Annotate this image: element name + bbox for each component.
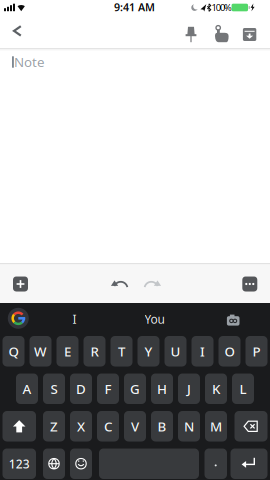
button[interactable] [240, 24, 260, 44]
button[interactable] [13, 276, 28, 291]
staticText: W [34, 342, 47, 360]
button[interactable]: G [124, 373, 146, 404]
staticText: V [131, 417, 139, 435]
staticText: G [130, 380, 140, 398]
button[interactable] [43, 448, 65, 479]
staticText: K [212, 380, 220, 398]
staticText: Q [8, 342, 18, 360]
button[interactable]: T [110, 336, 132, 366]
staticText: I [200, 342, 205, 360]
staticText: N [184, 417, 194, 435]
button[interactable] [242, 276, 257, 291]
staticText: D [76, 380, 86, 398]
staticText: Y [144, 342, 152, 360]
button[interactable] [9, 23, 25, 39]
button[interactable]: H [151, 373, 173, 404]
button[interactable] [8, 308, 29, 329]
staticText: B [157, 417, 166, 435]
staticText: F [104, 380, 111, 398]
staticText: H [157, 380, 167, 398]
button[interactable]: Q [2, 336, 24, 366]
button[interactable]: P [245, 336, 267, 366]
button[interactable]: F [97, 373, 119, 404]
button[interactable]: D [70, 373, 92, 404]
button[interactable]: O [218, 336, 240, 366]
button[interactable]: C [97, 411, 119, 441]
staticText: T [118, 342, 125, 360]
button[interactable]: You [124, 302, 184, 335]
button[interactable]: 123 [2, 448, 36, 479]
button[interactable]: Y [137, 336, 159, 366]
button[interactable]: A [16, 373, 38, 404]
staticText: 9:41 AM [114, 0, 155, 14]
staticText: E [64, 342, 71, 360]
button[interactable]: V [124, 411, 146, 441]
button[interactable]: R [83, 336, 105, 366]
staticText: You [144, 311, 164, 327]
staticText: 100% [211, 1, 232, 14]
button[interactable] [181, 25, 201, 45]
staticText: M [210, 417, 222, 435]
button[interactable]: M [205, 411, 227, 441]
staticText: X [77, 417, 85, 435]
button[interactable]: L [232, 373, 254, 404]
staticText: Z [50, 417, 58, 435]
button[interactable]: W [29, 336, 51, 366]
button[interactable] [230, 448, 267, 479]
staticText: O [224, 342, 234, 360]
button[interactable]: Z [43, 411, 65, 441]
staticText: R [90, 342, 98, 360]
button[interactable]: K [205, 373, 227, 404]
button[interactable] [223, 310, 243, 328]
staticText: P [252, 342, 260, 360]
button[interactable]: I [191, 336, 213, 366]
button[interactable] [204, 448, 227, 479]
staticText: U [170, 342, 180, 360]
button[interactable]: J [178, 373, 200, 404]
button[interactable] [109, 274, 131, 294]
button[interactable]: E [56, 336, 78, 366]
button[interactable] [70, 448, 92, 479]
staticText: L [239, 380, 246, 398]
button[interactable] [140, 274, 162, 294]
button[interactable] [99, 448, 199, 479]
button[interactable]: S [43, 373, 65, 404]
button[interactable] [2, 411, 36, 441]
staticText: Note [14, 53, 45, 71]
staticText: I [72, 311, 76, 327]
button[interactable]: I [44, 302, 104, 335]
button[interactable] [234, 411, 267, 441]
staticText: J [187, 380, 191, 398]
staticText: S [50, 380, 57, 398]
button[interactable] [210, 23, 232, 45]
staticText: A [22, 380, 31, 398]
staticText: C [104, 417, 112, 435]
button[interactable]: B [151, 411, 173, 441]
button[interactable]: N [178, 411, 200, 441]
staticText: 123 [9, 456, 30, 472]
button[interactable]: X [70, 411, 92, 441]
button[interactable]: U [164, 336, 186, 366]
